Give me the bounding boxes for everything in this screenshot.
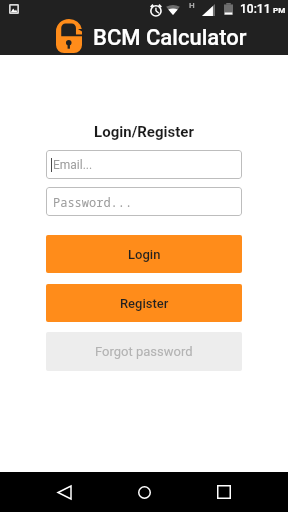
button[interactable]: Email...: [46, 150, 242, 179]
staticText: Email...: [53, 158, 93, 172]
button[interactable]: Home: [123, 472, 165, 512]
staticText: Login/Register: [0, 123, 288, 141]
staticText: 10:11: [240, 2, 271, 16]
staticText: Forgot password: [95, 344, 193, 359]
staticText: Login: [128, 247, 161, 262]
staticText: PM: [273, 6, 286, 15]
button[interactable]: Password...: [46, 187, 242, 216]
button[interactable]: Register: [46, 284, 242, 322]
button[interactable]: Forgot password: [46, 332, 242, 371]
button[interactable]: Recents: [203, 472, 245, 512]
button[interactable]: Login: [46, 235, 242, 273]
staticText: Password...: [53, 194, 133, 210]
staticText: Register: [120, 296, 169, 311]
button[interactable]: Back: [43, 472, 85, 512]
staticText: BCM Calculator: [93, 25, 247, 51]
staticText: H: [189, 1, 195, 10]
